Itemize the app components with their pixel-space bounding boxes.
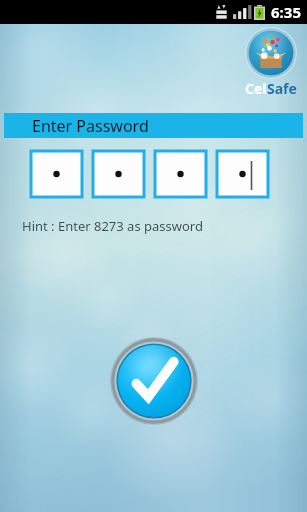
button[interactable]	[31, 151, 82, 197]
button[interactable]: Confirm password	[110, 337, 198, 425]
staticText: Hint : Enter 8273 as password	[22, 217, 203, 235]
button[interactable]: Enter Password	[4, 113, 303, 138]
staticText: Enter Password	[32, 115, 149, 137]
button[interactable]	[93, 151, 144, 197]
other: CelSafe logo	[240, 27, 302, 98]
button[interactable]	[155, 151, 206, 197]
staticText: 6:35	[271, 2, 301, 22]
button[interactable]	[217, 151, 268, 197]
staticText: Safe	[267, 79, 297, 98]
staticText: Cel	[245, 79, 267, 98]
